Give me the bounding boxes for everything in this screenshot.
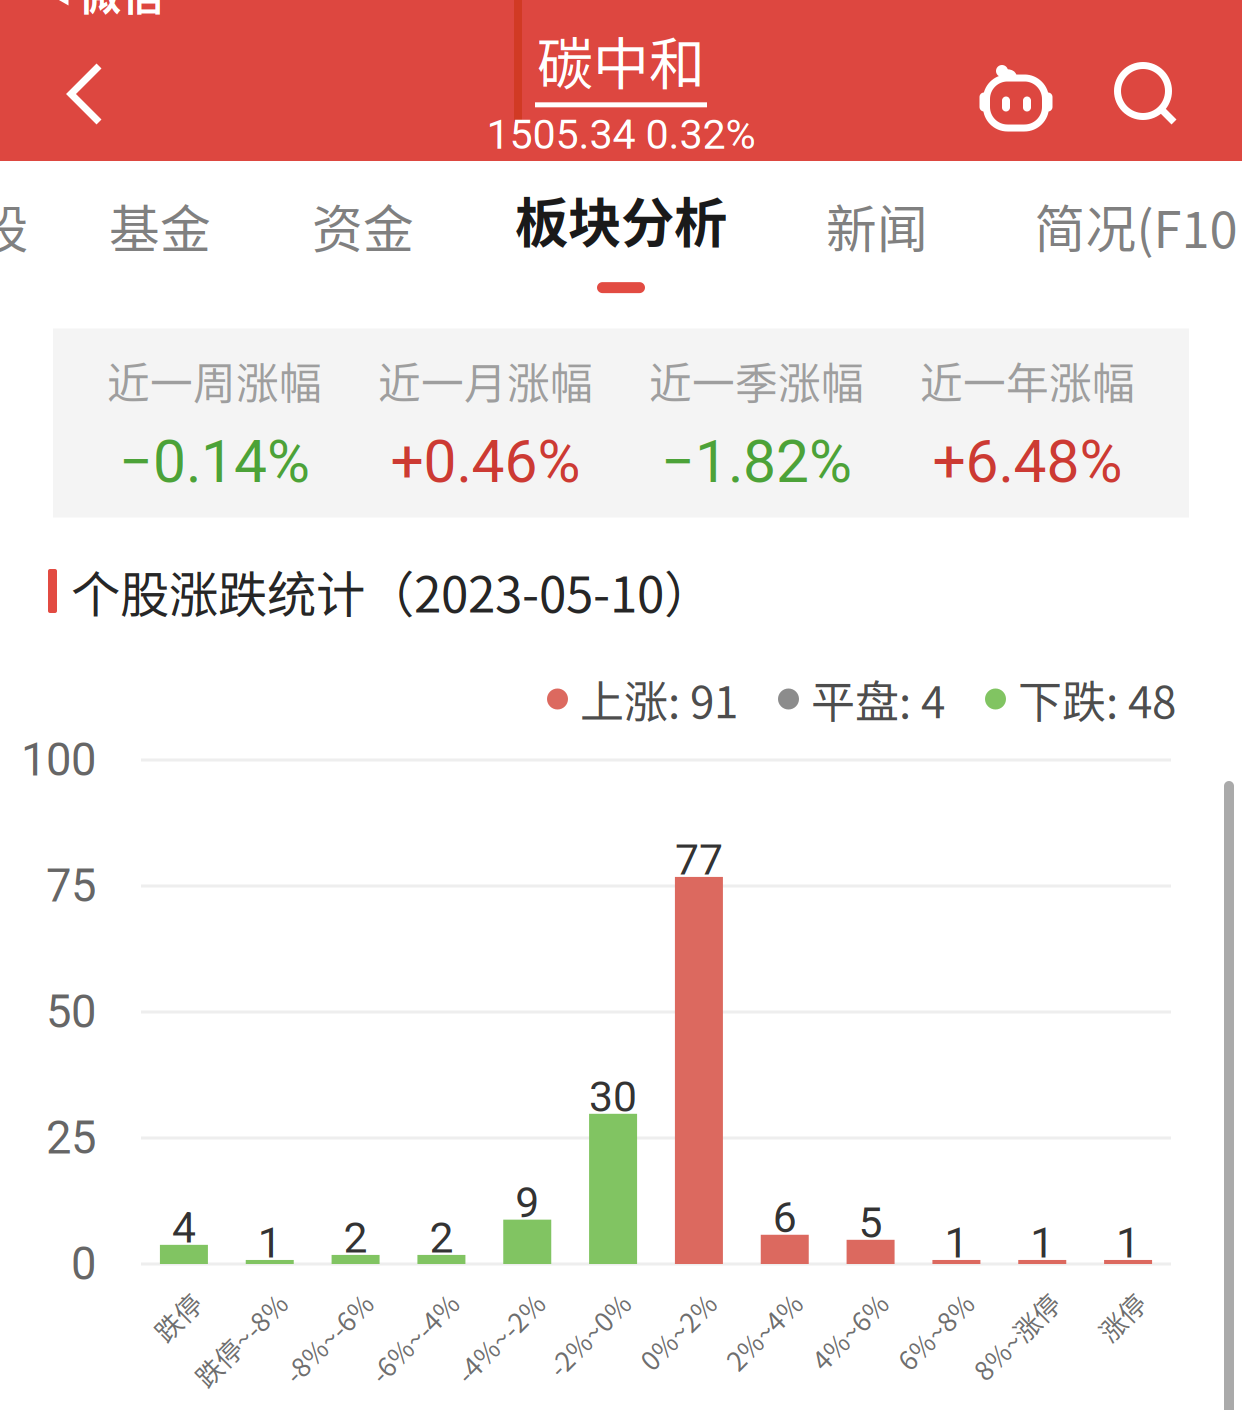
- staticText: -4%~-2%: [413, 1284, 526, 1323]
- staticText: 100: [21, 733, 96, 786]
- staticText: 资金: [312, 189, 414, 263]
- button[interactable]: 资金: [294, 167, 432, 285]
- staticText: -2%~0%: [508, 1284, 612, 1323]
- staticText: 77: [675, 835, 723, 885]
- staticText: 近一年涨幅: [920, 350, 1135, 411]
- staticText: 2%~4%: [689, 1284, 784, 1323]
- staticText: 1505.34 0.32%: [486, 110, 755, 159]
- staticText: 4: [172, 1203, 196, 1253]
- staticText: 50: [46, 985, 96, 1038]
- staticText: 4%~6%: [775, 1284, 870, 1323]
- staticText: 个股涨跌统计（2023-05-10）: [71, 555, 713, 627]
- staticText: 6: [773, 1193, 797, 1243]
- button[interactable]: 基金: [91, 167, 229, 285]
- staticText: 25: [46, 1111, 96, 1164]
- staticText: +6.48%: [932, 427, 1122, 496]
- staticText: 1: [1030, 1218, 1054, 1268]
- staticText: 1: [1116, 1218, 1140, 1268]
- staticText: +0.46%: [390, 427, 580, 496]
- staticText: 8%~涨停: [932, 1284, 1041, 1323]
- staticText: 涨停: [1073, 1284, 1127, 1323]
- staticText: 0%~2%: [603, 1284, 698, 1323]
- button[interactable]: Search: [1114, 62, 1176, 124]
- staticText: 5: [859, 1198, 883, 1248]
- staticText: 平盘: 4: [811, 667, 945, 731]
- staticText: −0.14%: [119, 427, 310, 496]
- staticText: 0: [71, 1237, 96, 1290]
- staticText: -6%~-4%: [327, 1284, 440, 1323]
- staticText: 新闻: [826, 189, 928, 263]
- staticText: -8%~-6%: [242, 1284, 355, 1323]
- staticText: 板块分析: [515, 181, 727, 258]
- staticText: 下跌: 48: [1018, 667, 1176, 731]
- staticText: 股: [0, 189, 28, 263]
- staticText: 基金: [109, 189, 211, 263]
- button[interactable]: 新闻: [808, 167, 946, 285]
- staticText: 2: [344, 1213, 368, 1263]
- staticText: 75: [46, 859, 96, 912]
- staticText: 跌停~-8%: [151, 1284, 269, 1323]
- staticText: 跌停: [129, 1284, 183, 1323]
- staticText: 1: [944, 1218, 968, 1268]
- staticText: 碳中和: [537, 19, 705, 100]
- staticText: 30: [589, 1072, 637, 1122]
- staticText: 上涨: 91: [580, 667, 738, 731]
- staticText: 1: [258, 1218, 282, 1268]
- button[interactable]: Back: [31, 39, 139, 149]
- staticText: −1.82%: [661, 427, 852, 496]
- staticText: 6%~8%: [860, 1284, 955, 1323]
- staticText: 近一月涨幅: [378, 350, 593, 411]
- staticText: 近一季涨幅: [649, 350, 864, 411]
- staticText: 9: [515, 1178, 539, 1228]
- button[interactable]: 板块分析: [499, 167, 743, 307]
- staticText: 近一周涨幅: [107, 350, 322, 411]
- staticText: 简况(F10: [1034, 189, 1237, 263]
- staticText: 2: [429, 1213, 453, 1263]
- staticText: 微信: [78, 0, 164, 23]
- button[interactable]: Smart assistant: [975, 59, 1051, 125]
